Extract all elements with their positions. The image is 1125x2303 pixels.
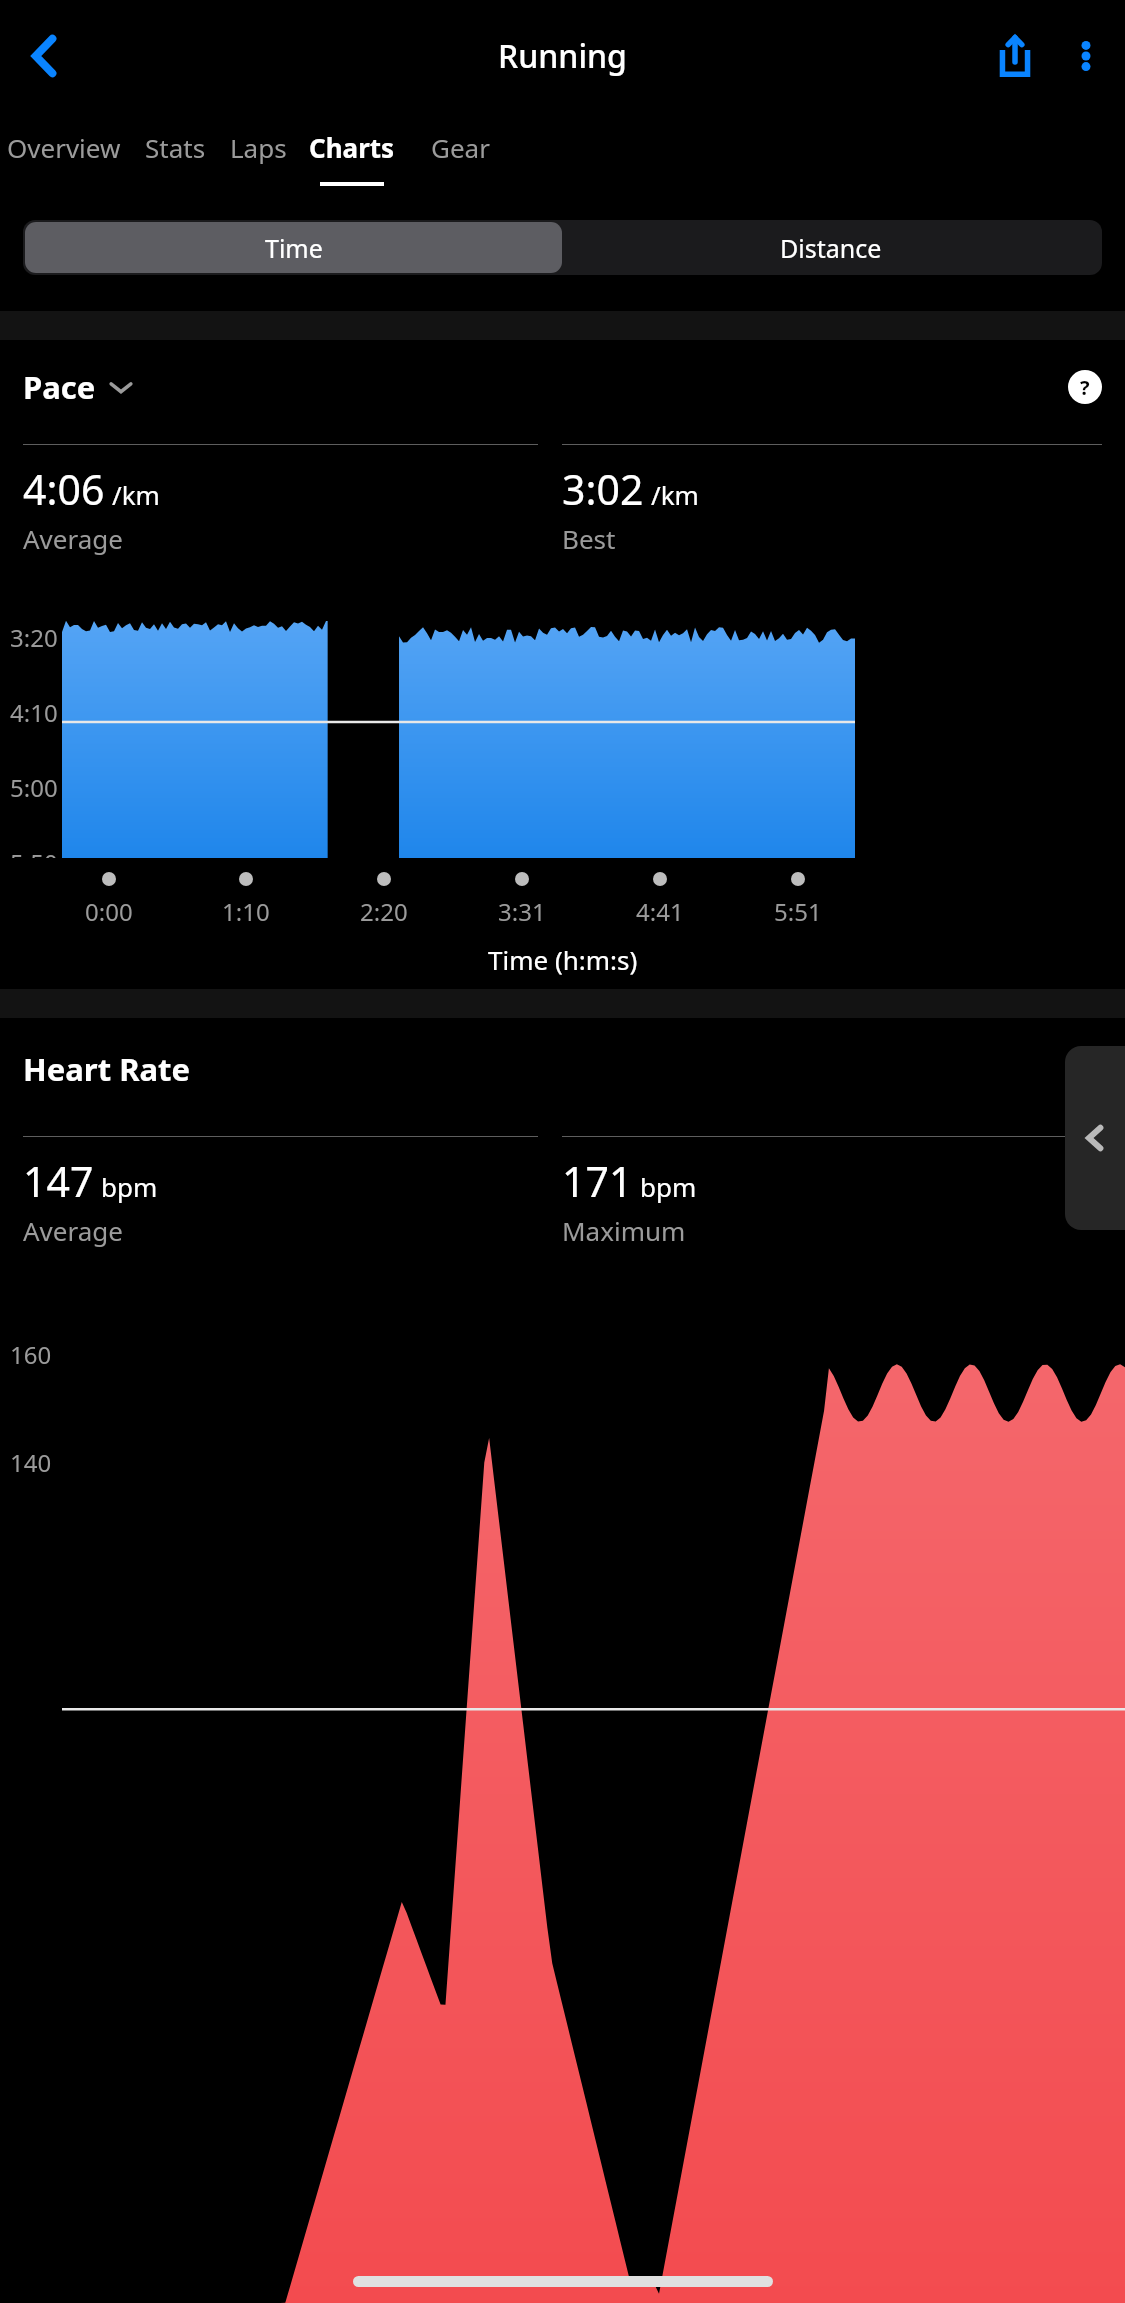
staticText: 0:00 bbox=[85, 895, 133, 928]
staticText: Stats bbox=[145, 130, 206, 165]
button[interactable]: More options bbox=[1053, 23, 1119, 89]
button[interactable]: Charts bbox=[292, 112, 412, 220]
button[interactable]: Distance bbox=[562, 222, 1100, 273]
staticText: Maximum bbox=[562, 1213, 686, 1248]
staticText: 171 bbox=[562, 1153, 633, 1209]
button[interactable]: Stats bbox=[115, 112, 235, 220]
staticText: bpm bbox=[101, 1169, 158, 1204]
button[interactable]: Overview bbox=[4, 112, 124, 220]
staticText: /km bbox=[651, 477, 699, 512]
staticText: Distance bbox=[780, 231, 882, 265]
button[interactable]: Heart Rate bbox=[23, 1048, 191, 1090]
staticText: 3:31 bbox=[498, 895, 546, 928]
staticText: 160 bbox=[10, 1338, 52, 1371]
button[interactable]: Laps bbox=[198, 112, 318, 220]
staticText: Time bbox=[265, 231, 323, 265]
staticText: 1:10 bbox=[222, 895, 270, 928]
button[interactable]: Back bbox=[14, 24, 78, 88]
staticText: Best bbox=[562, 521, 616, 556]
staticText: Gear bbox=[431, 130, 490, 165]
staticText: /km bbox=[112, 477, 160, 512]
staticText: 4:10 bbox=[10, 696, 58, 729]
button[interactable]: Help bbox=[1068, 370, 1102, 404]
button[interactable]: Share bbox=[977, 18, 1053, 94]
staticText: 4:06 bbox=[23, 461, 105, 517]
staticText: Time (h:m:s) bbox=[488, 942, 638, 977]
staticText: 5:00 bbox=[10, 771, 58, 804]
staticText: ? bbox=[1080, 374, 1090, 401]
staticText: bpm bbox=[640, 1169, 697, 1204]
staticText: Overview bbox=[7, 130, 121, 165]
button[interactable]: Gear bbox=[400, 112, 520, 220]
staticText: 5:50 bbox=[10, 846, 58, 858]
staticText: Charts bbox=[309, 130, 395, 165]
staticText: Laps bbox=[230, 130, 287, 165]
staticText: 3:20 bbox=[10, 621, 58, 654]
staticText: 2:20 bbox=[360, 895, 408, 928]
staticText: 5:51 bbox=[774, 895, 822, 928]
staticText: 3:02 bbox=[562, 461, 644, 517]
staticText: Average bbox=[23, 521, 123, 556]
staticText: Average bbox=[23, 1213, 123, 1248]
staticText: Running bbox=[498, 34, 627, 78]
staticText: 4:41 bbox=[636, 895, 684, 928]
staticText: Pace bbox=[23, 366, 96, 408]
button[interactable]: Pace bbox=[23, 366, 134, 408]
button[interactable]: Open side panel bbox=[1065, 1046, 1125, 1230]
staticText: 147 bbox=[23, 1153, 94, 1209]
staticText: 140 bbox=[10, 1446, 52, 1479]
button[interactable]: Time bbox=[25, 222, 562, 273]
